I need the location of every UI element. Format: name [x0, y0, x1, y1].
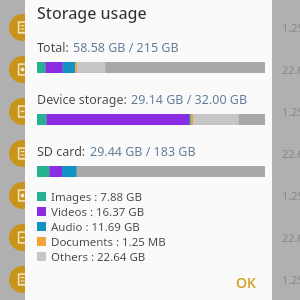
staticText: Total:: [37, 39, 69, 56]
staticText: Audio : 11.69 GB: [51, 219, 140, 234]
staticText: 22.6 GB: [282, 230, 300, 245]
staticText: 29.14 GB / 32.00 GB: [131, 91, 248, 108]
staticText: 58.58 GB / 215 GB: [73, 39, 179, 56]
staticText: Others : 22.64 GB: [51, 249, 146, 264]
staticText: Documents : 1.25 MB: [51, 234, 166, 249]
staticText: Device storage:: [37, 91, 127, 108]
staticText: 29.44 GB / 183 GB: [90, 143, 196, 160]
staticText: 1.25 MB: [282, 188, 300, 203]
button[interactable]: OK: [227, 268, 265, 297]
staticText: 22.6 GB: [282, 62, 300, 77]
staticText: 1.25 MB: [282, 272, 300, 287]
staticText: Images : 7.88 GB: [51, 189, 142, 204]
staticText: 22.6 GB: [282, 146, 300, 161]
staticText: 1.25 MB: [282, 104, 300, 119]
staticText: OK: [236, 273, 256, 292]
staticText: SD card:: [37, 143, 86, 160]
staticText: Videos : 16.37 GB: [51, 204, 145, 219]
staticText: 1.25 MB: [282, 20, 300, 35]
staticText: Storage usage: [37, 2, 147, 24]
